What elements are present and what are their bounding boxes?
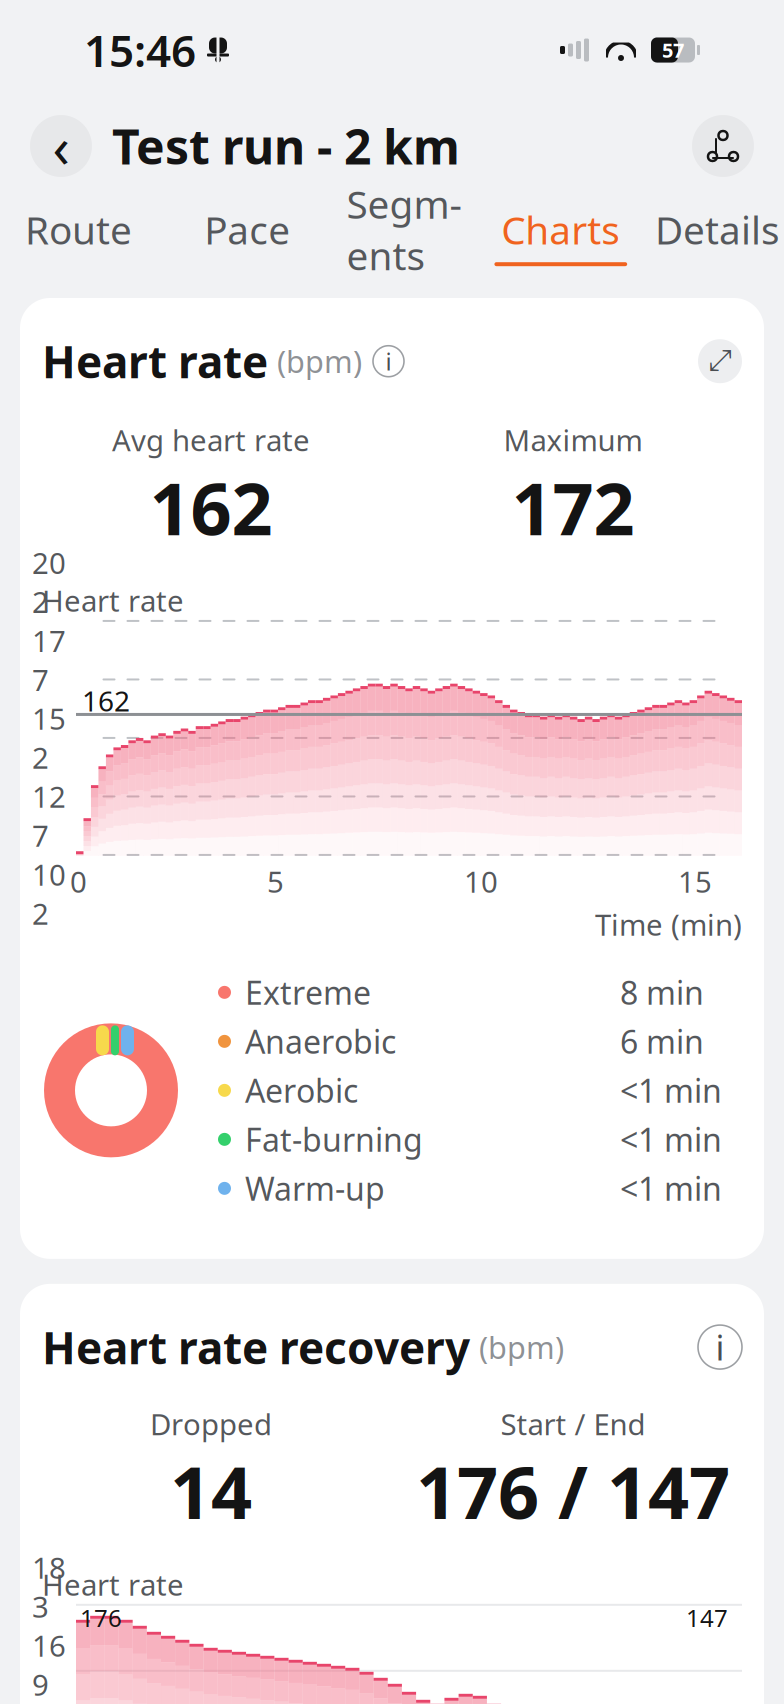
staticText: Charts [501,204,620,255]
staticText: <1 min [620,1167,722,1210]
staticText: 0 [70,862,87,901]
staticText: 162 [149,459,272,555]
staticText: <1 min [620,1069,722,1112]
button[interactable]: About heart rate recovery [698,1325,742,1369]
button[interactable]: Back [30,115,92,177]
button[interactable]: Share route [692,115,754,177]
staticText: Aerobic [245,1069,358,1112]
staticText: 57 [662,37,684,63]
button[interactable]: Route [0,204,157,266]
staticText: 10 [464,862,498,901]
staticText: (bpm) [277,341,362,382]
staticText: Pace [204,204,290,255]
staticText: Fat-burning [245,1118,423,1161]
staticText: 15:46 [84,21,196,79]
staticText: 183 [32,1548,66,1626]
staticText: Time (min) [595,905,742,944]
staticText: 15 [678,862,712,901]
button[interactable]: About heart rate [362,346,404,377]
staticText: Segments [346,178,461,281]
staticText: Heart rate recovery [42,1318,470,1376]
staticText: 176 [80,1602,122,1634]
staticText: 169 [32,1626,66,1704]
staticText: 202 [32,543,66,621]
staticText: 5 [267,862,284,901]
staticText: 177 [32,621,66,699]
staticText: Heart rate [42,581,184,620]
staticText: Heart rate [42,332,268,390]
staticText: 162 [82,682,130,719]
staticText: ⤢ [708,347,731,375]
staticText: Test run - 2 km [112,114,460,178]
staticText: Details [655,204,780,255]
staticText: 127 [32,777,66,855]
staticText: Dropped [150,1404,272,1443]
button[interactable]: Pace [181,204,314,266]
staticText: Avg heart rate [112,420,310,459]
staticText: Warm-up [245,1167,385,1210]
staticText: Route [25,204,132,255]
staticText: 147 [686,1602,728,1634]
staticText: ‹ [52,109,69,183]
staticText: Heart rate [42,1565,184,1604]
staticText: i [715,1324,724,1370]
button[interactable]: Segments [338,178,470,292]
staticText: 8 min [620,971,704,1014]
button[interactable]: Details [651,204,784,266]
staticText: Start / End [500,1404,645,1443]
staticText: 172 [511,459,634,555]
staticText: 102 [32,855,66,933]
staticText: Maximum [503,420,642,459]
button[interactable]: Charts [494,204,627,266]
button[interactable]: Expand chart [698,339,742,383]
staticText: Anaerobic [245,1020,396,1063]
staticText: <1 min [620,1118,722,1161]
staticText: (bpm) [479,1327,564,1367]
staticText: 176 / 147 [416,1443,730,1539]
staticText: 6 min [620,1020,704,1063]
staticText: 14 [170,1443,252,1539]
staticText: i [385,345,391,377]
staticText: 152 [32,699,66,777]
staticText: Extreme [245,971,371,1014]
